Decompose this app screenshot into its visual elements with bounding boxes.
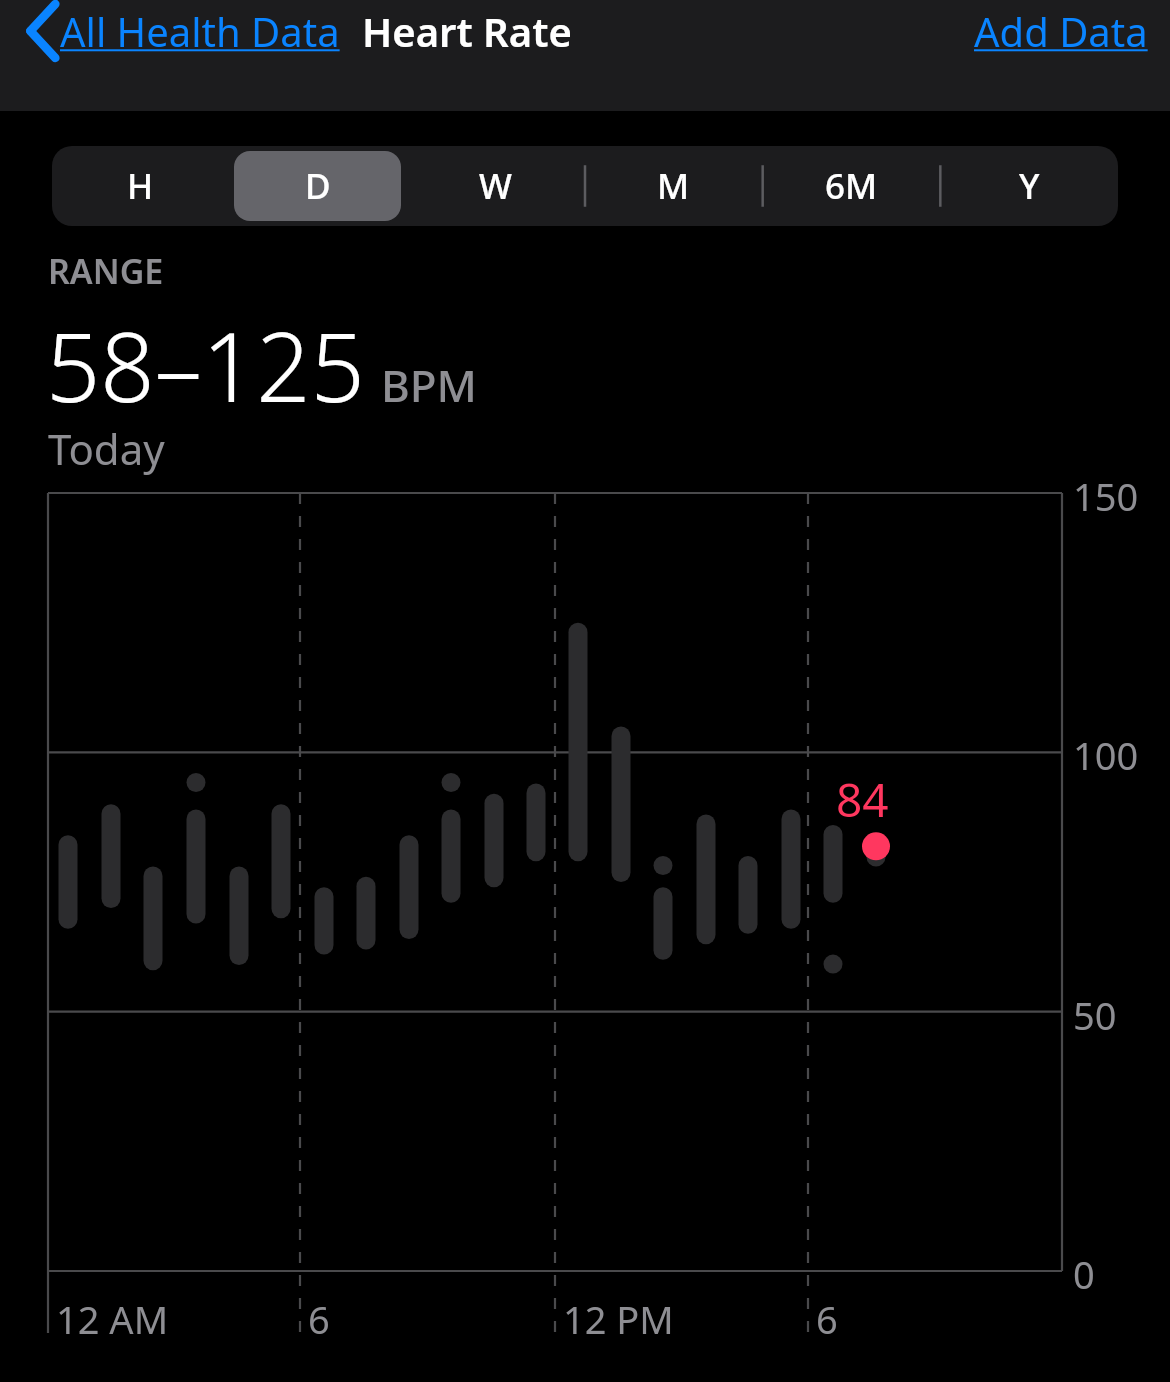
staticText: Heart Rate	[362, 4, 572, 58]
button[interactable]: 6M	[767, 151, 935, 221]
staticText: D	[305, 162, 331, 210]
button[interactable]: Back, All Health Data	[18, 0, 340, 62]
staticText: All Health Data	[60, 4, 340, 58]
staticText: 50	[1073, 989, 1117, 1041]
staticText: 6	[816, 1293, 838, 1345]
staticText: M	[657, 162, 690, 210]
staticText: 84	[836, 768, 889, 831]
staticText: RANGE	[48, 248, 164, 294]
button[interactable]: Y	[945, 151, 1113, 221]
staticText: 12 AM	[56, 1293, 169, 1345]
staticText: BPM	[381, 355, 478, 415]
staticText: H	[127, 162, 154, 210]
staticText: Today	[48, 420, 165, 477]
staticText: 12 PM	[563, 1293, 674, 1345]
staticText: 58–125	[46, 300, 365, 429]
staticText: 150	[1073, 470, 1139, 522]
button[interactable]: W	[411, 151, 579, 221]
button[interactable]: Add Data	[974, 4, 1148, 58]
staticText: 6	[308, 1293, 330, 1345]
staticText: 6M	[825, 162, 878, 210]
staticText: 0	[1073, 1248, 1095, 1300]
button[interactable]: M	[589, 151, 757, 221]
staticText: Y	[1019, 162, 1040, 210]
staticText: 100	[1073, 729, 1139, 781]
button[interactable]: D	[234, 151, 401, 221]
button[interactable]: H	[57, 151, 224, 221]
staticText: W	[479, 162, 512, 210]
staticText: Add Data	[974, 4, 1148, 58]
